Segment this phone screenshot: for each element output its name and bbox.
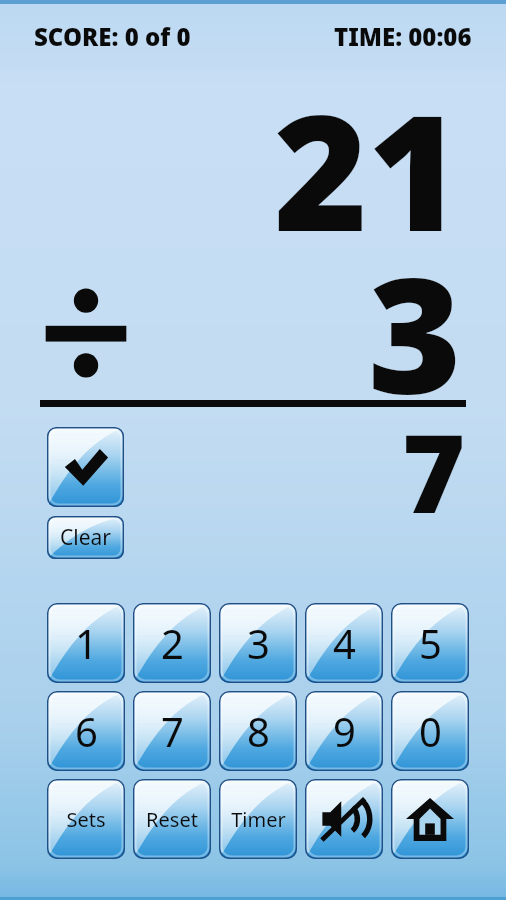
button[interactable]: 2 — [133, 603, 211, 683]
staticText: 21 — [274, 60, 462, 278]
staticText: 3 — [368, 222, 462, 440]
staticText: 0 — [419, 704, 442, 758]
staticText: Sets — [66, 806, 106, 833]
staticText: 1 — [75, 616, 98, 670]
button[interactable]: 0 — [391, 691, 469, 771]
button[interactable]: Submit answer — [47, 427, 124, 507]
staticText: Reset — [146, 806, 198, 833]
staticText: Timer — [231, 806, 286, 833]
staticText: TIME: 00:06 — [334, 20, 472, 53]
button[interactable]: 7 — [133, 691, 211, 771]
button[interactable]: Reset — [133, 779, 211, 859]
staticText: 4 — [333, 616, 356, 670]
button[interactable]: 1 — [47, 603, 125, 683]
staticText: 7 — [402, 398, 466, 545]
button[interactable]: Home — [391, 779, 469, 859]
staticText: 9 — [333, 704, 356, 758]
staticText: 6 — [75, 704, 98, 758]
button[interactable]: 6 — [47, 691, 125, 771]
staticText: 3 — [247, 616, 270, 670]
button[interactable]: Timer — [219, 779, 297, 859]
button[interactable]: 4 — [305, 603, 383, 683]
button[interactable]: 8 — [219, 691, 297, 771]
staticText: SCORE: 0 of 0 — [34, 20, 191, 53]
button[interactable]: Clear — [47, 516, 124, 559]
button[interactable]: Mute sound — [305, 779, 383, 859]
staticText: 2 — [161, 616, 184, 670]
staticText: 5 — [419, 616, 442, 670]
button[interactable]: 3 — [219, 603, 297, 683]
staticText: 7 — [161, 704, 184, 758]
button[interactable]: 5 — [391, 603, 469, 683]
button[interactable]: 9 — [305, 691, 383, 771]
button[interactable]: Sets — [47, 779, 125, 859]
staticText: Clear — [60, 523, 111, 552]
staticText: 8 — [247, 704, 270, 758]
